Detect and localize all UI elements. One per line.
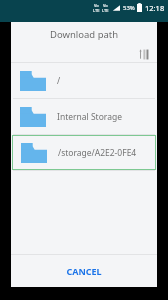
staticText: Download path — [50, 28, 119, 41]
staticText: Internal Storage — [57, 111, 122, 123]
staticText: LTE — [102, 8, 109, 13]
staticText: /storage/A2E2-0FE4 — [58, 147, 137, 159]
staticText: CANCEL — [66, 265, 102, 277]
staticText: 12:18 — [145, 3, 165, 13]
button[interactable]: / — [11, 63, 157, 98]
staticText: / — [57, 75, 61, 87]
staticText: Vo — [103, 3, 108, 8]
staticText: LTE — [93, 8, 100, 13]
button[interactable]: /storage/A2E2-0FE4 — [12, 135, 156, 170]
staticText: 53% — [123, 4, 135, 12]
button[interactable]: CANCEL — [11, 255, 157, 287]
button[interactable]: Internal Storage — [11, 99, 157, 134]
staticText: Vo — [94, 3, 99, 8]
button[interactable]: Sort — [136, 46, 152, 62]
